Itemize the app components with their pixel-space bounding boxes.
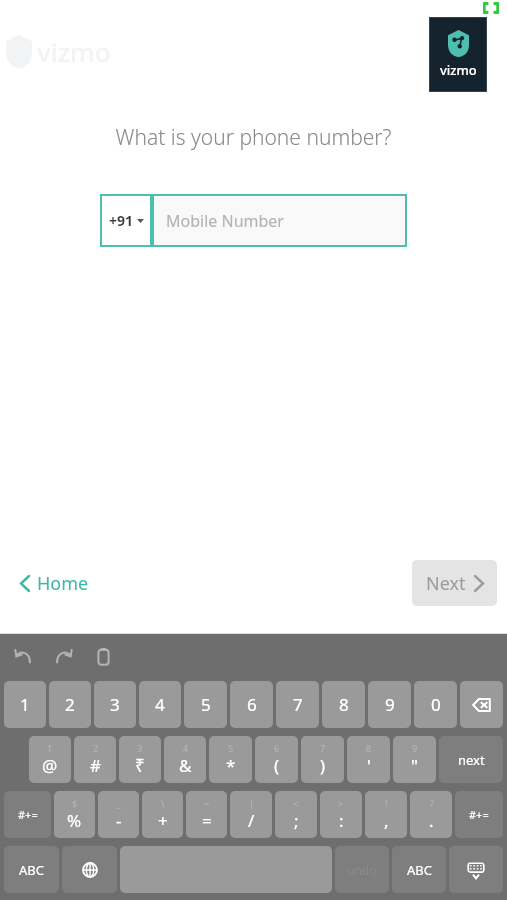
button[interactable]: 5	[184, 681, 227, 728]
staticText: _	[117, 797, 121, 809]
staticText: ABC	[19, 861, 44, 879]
staticText: =	[202, 809, 212, 832]
button[interactable]: #+=	[4, 791, 51, 838]
staticText: 8	[339, 693, 349, 716]
button[interactable]: $	[54, 791, 95, 838]
staticText: next	[458, 751, 485, 769]
staticText: ,	[384, 809, 389, 832]
staticText: %	[67, 809, 82, 832]
button[interactable]: 2	[74, 736, 116, 783]
button[interactable]: ?	[410, 791, 452, 838]
staticText: Next	[426, 571, 466, 595]
staticText: vizmo	[37, 34, 111, 69]
button[interactable]: ~	[186, 791, 227, 838]
button[interactable]: Change language	[62, 846, 117, 893]
button[interactable]: 4	[164, 736, 206, 783]
staticText: &	[179, 754, 192, 777]
button[interactable]: ABC	[392, 846, 446, 893]
staticText: 5	[201, 693, 211, 716]
staticText: '	[367, 754, 371, 777]
button[interactable]: 3	[119, 736, 161, 783]
button[interactable]: 7	[276, 681, 319, 728]
staticText: |	[249, 797, 254, 809]
button[interactable]: 1	[29, 736, 71, 783]
staticText: <	[293, 797, 299, 809]
staticText: 4	[155, 693, 165, 716]
staticText: !	[385, 797, 388, 809]
button[interactable]: Hide keyboard	[449, 846, 503, 893]
button[interactable]: 4	[139, 681, 181, 728]
staticText: ;	[294, 809, 299, 832]
staticText: #+=	[18, 807, 38, 822]
staticText: \	[161, 797, 165, 809]
button[interactable]: 8	[347, 736, 390, 783]
button[interactable]: Home	[10, 565, 99, 602]
staticText: /	[248, 809, 255, 832]
staticText: 2	[65, 693, 75, 716]
staticText: #+=	[469, 807, 489, 822]
staticText: (	[274, 754, 280, 777]
button[interactable]: Undo	[10, 643, 36, 669]
staticText: 9	[412, 742, 418, 754]
staticText: @	[42, 754, 58, 777]
staticText: )	[320, 754, 326, 777]
button[interactable]: Vizmo	[429, 17, 487, 92]
staticText: >	[338, 797, 344, 809]
button[interactable]: Next	[412, 560, 497, 606]
staticText: 2	[93, 742, 99, 754]
button[interactable]: 2	[49, 681, 91, 728]
button[interactable]: 7	[301, 736, 344, 783]
button[interactable]: #+=	[455, 791, 503, 838]
staticText: 5	[228, 742, 234, 754]
staticText: 6	[274, 742, 280, 754]
button[interactable]: 9	[393, 736, 436, 783]
button[interactable]: 8	[322, 681, 365, 728]
staticText: Home	[37, 571, 89, 596]
button[interactable]: Mobile Number	[152, 194, 407, 247]
staticText: Mobile Number	[166, 210, 284, 232]
button[interactable]: +91	[100, 194, 152, 247]
staticText: 4	[183, 742, 189, 754]
button[interactable]: Fullscreen	[483, 2, 499, 14]
staticText: +91	[109, 211, 134, 230]
staticText: "	[411, 754, 418, 777]
button[interactable]: 1	[4, 681, 46, 728]
staticText: 8	[366, 742, 372, 754]
staticText: 1	[47, 742, 53, 754]
staticText: *	[226, 754, 236, 777]
button[interactable]: !	[365, 791, 407, 838]
staticText: undo	[347, 862, 377, 878]
staticText: 7	[320, 742, 326, 754]
staticText: $	[72, 797, 78, 809]
staticText: 3	[110, 693, 120, 716]
staticText: vizmo	[440, 61, 477, 79]
staticText: 9	[385, 693, 395, 716]
button[interactable]: 9	[368, 681, 411, 728]
staticText: :	[339, 809, 344, 832]
staticText: 7	[293, 693, 303, 716]
button[interactable]: Redo	[50, 643, 76, 669]
button[interactable]: <	[275, 791, 317, 838]
button[interactable]: \	[142, 791, 183, 838]
button[interactable]: 3	[94, 681, 136, 728]
staticText: ₹	[135, 754, 145, 777]
button[interactable]: 0	[414, 681, 457, 728]
button[interactable]: ABC	[4, 846, 59, 893]
staticText: ~	[204, 797, 210, 809]
staticText: What is your phone number?	[0, 123, 507, 152]
staticText: 3	[137, 742, 143, 754]
staticText: ABC	[407, 861, 432, 879]
button[interactable]: >	[320, 791, 362, 838]
button[interactable]: 6	[230, 681, 273, 728]
staticText: 0	[431, 693, 441, 716]
staticText: 1	[20, 693, 30, 716]
button[interactable]: _	[98, 791, 139, 838]
button[interactable]: 6	[255, 736, 298, 783]
button[interactable]: |	[230, 791, 272, 838]
button[interactable]: Backspace	[460, 681, 503, 728]
button[interactable]: next	[439, 736, 503, 783]
button[interactable]: 5	[209, 736, 252, 783]
button[interactable]: Clipboard	[90, 643, 116, 669]
